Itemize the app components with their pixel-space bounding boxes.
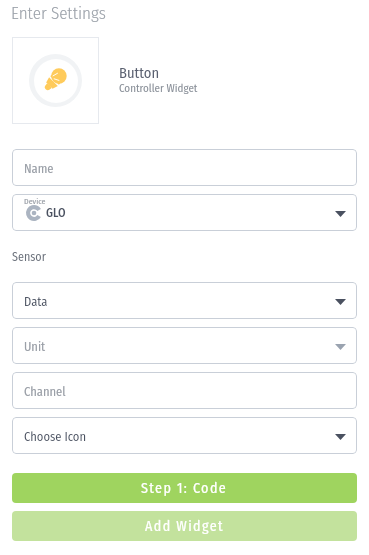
staticText: Channel xyxy=(24,384,66,399)
staticText: Choose Icon xyxy=(24,429,86,444)
button[interactable]: Step 1: Code xyxy=(12,473,357,503)
staticText: Name xyxy=(24,161,54,176)
button[interactable]: Device xyxy=(12,194,357,231)
button[interactable]: Widget icon xyxy=(12,37,99,124)
staticText: Add Widget xyxy=(145,518,225,535)
button[interactable]: Choose Icon xyxy=(12,417,357,454)
button[interactable]: Add Widget xyxy=(12,511,357,541)
other: Device logo xyxy=(26,205,42,221)
button[interactable]: Unit xyxy=(12,327,357,364)
staticText: Device xyxy=(24,197,46,207)
staticText: Enter Settings xyxy=(11,3,106,23)
staticText: GLO xyxy=(46,206,66,220)
staticText: Sensor xyxy=(12,250,46,264)
staticText: Unit xyxy=(24,339,46,354)
staticText: Button xyxy=(119,64,160,81)
staticText: Data xyxy=(24,294,48,309)
staticText: Controller Widget xyxy=(119,82,198,95)
button[interactable]: Channel xyxy=(12,372,357,409)
button[interactable]: Name xyxy=(12,149,357,186)
button[interactable]: Data xyxy=(12,282,357,319)
staticText: Step 1: Code xyxy=(141,480,228,497)
